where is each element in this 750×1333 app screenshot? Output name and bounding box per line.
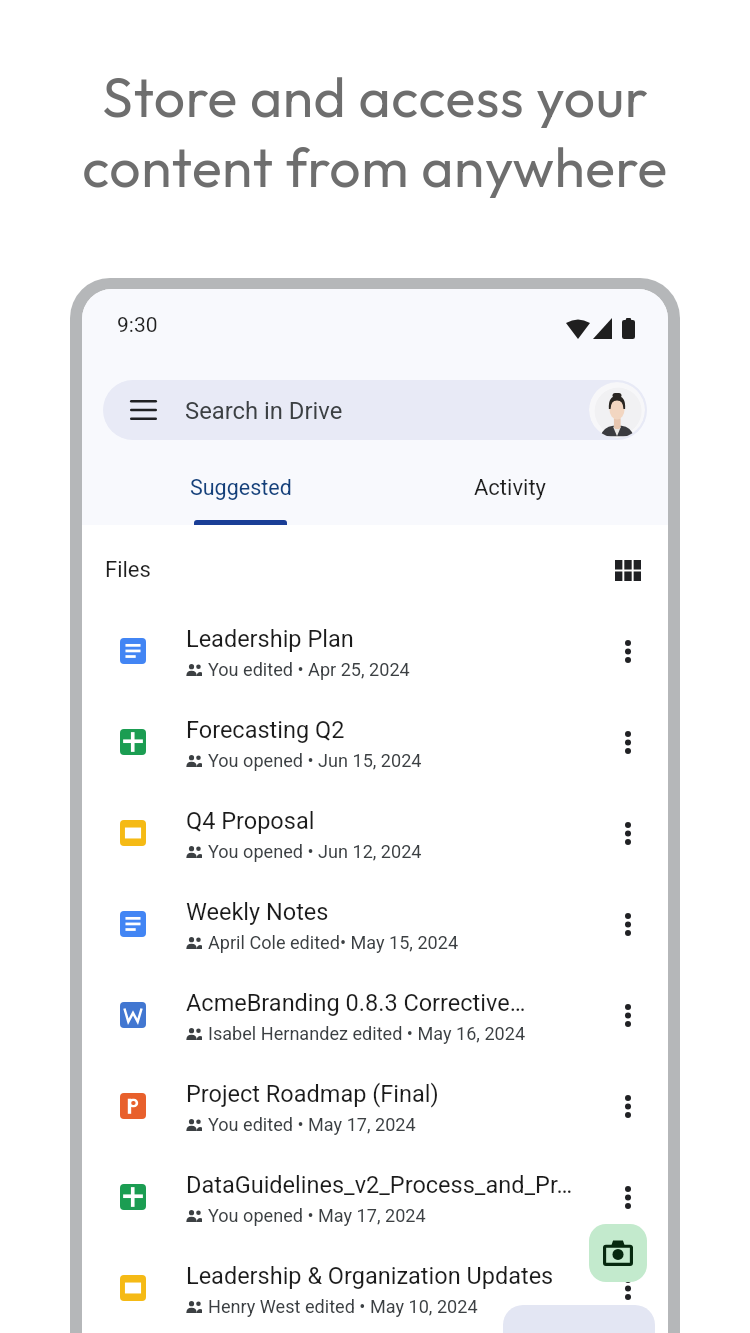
staticText: Files — [105, 557, 151, 583]
button[interactable]: More options — [600, 606, 656, 696]
staticText: Activity — [474, 475, 547, 501]
button[interactable]: Search in Drive — [103, 380, 647, 440]
button[interactable]: More options — [600, 697, 656, 787]
button[interactable]: Activity — [377, 440, 644, 525]
button[interactable]: AcmeBranding 0.8.3 Corrective… — [82, 969, 668, 1060]
staticText: You edited • Apr 25, 2024 — [208, 659, 410, 680]
button[interactable]: More options — [600, 879, 656, 969]
staticText: Henry West edited • May 10, 2024 — [208, 1296, 478, 1317]
button[interactable]: More options — [600, 970, 656, 1060]
staticText: You opened • May 17, 2024 — [208, 1205, 426, 1226]
staticText: Isabel Hernandez edited • May 16, 2024 — [208, 1023, 526, 1044]
button[interactable]: Grid view — [608, 550, 648, 590]
staticText: DataGuidelines_v2_Process_and_Pr… — [186, 1171, 573, 1199]
staticText: You edited • May 17, 2024 — [208, 1114, 416, 1135]
button[interactable]: Suggested — [107, 440, 374, 525]
button[interactable]: More options — [600, 1152, 656, 1242]
staticText: 9:30 — [117, 313, 158, 338]
staticText: Store and access your — [102, 62, 649, 132]
button[interactable]: Weekly Notes — [82, 878, 668, 969]
staticText: April Cole edited• May 15, 2024 — [208, 932, 459, 953]
button[interactable]: Scan with camera — [589, 1224, 647, 1282]
button[interactable]: Leadership & Organization Updates — [82, 1242, 668, 1333]
staticText: Leadership Plan — [186, 625, 354, 653]
staticText: Leadership & Organization Updates — [186, 1262, 554, 1290]
staticText: Weekly Notes — [186, 898, 329, 926]
button[interactable]: More options — [600, 1243, 656, 1333]
button[interactable]: More options — [600, 788, 656, 878]
staticText: Search in Drive — [185, 397, 343, 425]
staticText: Forecasting Q2 — [186, 716, 345, 744]
button[interactable]: Leadership Plan — [82, 605, 668, 696]
staticText: Suggested — [190, 475, 292, 500]
staticText: You opened • Jun 15, 2024 — [208, 750, 422, 771]
staticText: AcmeBranding 0.8.3 Corrective… — [186, 989, 526, 1017]
staticText: You opened • Jun 12, 2024 — [208, 841, 422, 862]
staticText: Project Roadmap (Final) — [186, 1080, 439, 1108]
button[interactable]: Q4 Proposal — [82, 787, 668, 878]
button[interactable]: Project Roadmap (Final) — [82, 1060, 668, 1151]
staticText: content from anywhere — [82, 132, 668, 202]
button[interactable]: Forecasting Q2 — [82, 696, 668, 787]
staticText: Q4 Proposal — [186, 807, 315, 835]
button[interactable] — [503, 1305, 655, 1333]
button[interactable]: More options — [600, 1061, 656, 1151]
button[interactable]: Account — [589, 382, 645, 438]
button[interactable]: DataGuidelines_v2_Process_and_Pr… — [82, 1151, 668, 1242]
